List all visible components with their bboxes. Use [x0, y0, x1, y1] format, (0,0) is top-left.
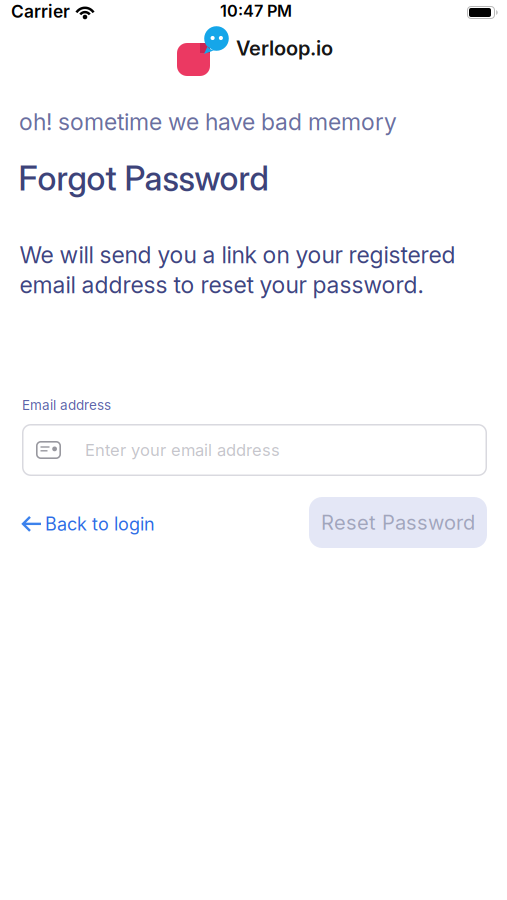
button[interactable]: Enter your email address [22, 424, 487, 476]
staticText: Email address [22, 397, 111, 413]
staticText: Back to login [45, 513, 155, 535]
staticText: Verloop.io [236, 36, 333, 60]
staticText: 10:47 PM [220, 1, 292, 21]
staticText: email address to reset your password. [19, 271, 423, 299]
staticText: Carrier [11, 1, 70, 22]
button[interactable]: Reset Password [309, 497, 487, 548]
staticText: oh! sometime we have bad memory [19, 108, 397, 136]
button[interactable]: Back to login [21, 513, 155, 535]
staticText: Forgot Password [18, 158, 268, 199]
staticText: Reset Password [321, 510, 475, 535]
staticText: Enter your email address [85, 440, 280, 460]
staticText: We will send you a link on your register… [19, 241, 455, 269]
